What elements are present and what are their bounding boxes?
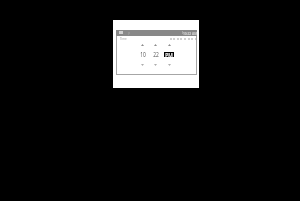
button[interactable]: Tool 1 <box>169 37 172 40</box>
button[interactable]: Increase hour <box>136 42 148 47</box>
staticText: 10 <box>140 50 146 59</box>
staticText: PM <box>165 51 173 60</box>
button[interactable]: Time <box>119 36 128 41</box>
button[interactable]: Decrease hour <box>136 62 148 67</box>
button[interactable]: PM <box>164 52 174 57</box>
button[interactable]: 10 <box>138 51 147 56</box>
button[interactable]: 22 <box>151 51 160 56</box>
button[interactable]: Increase minute <box>149 42 161 47</box>
button[interactable]: Tool 6 <box>187 37 190 40</box>
staticText: Time <box>120 36 127 41</box>
button[interactable]: Tool 4 <box>179 37 182 40</box>
staticText: 22 <box>153 50 159 59</box>
button[interactable]: Tool 7 <box>190 37 193 40</box>
button[interactable]: Decrease minute <box>149 62 161 67</box>
button[interactable]: Tool 3 <box>176 37 179 40</box>
button[interactable]: Increase AM or PM <box>163 42 175 47</box>
button[interactable]: Decrease AM or PM <box>163 62 175 67</box>
button[interactable]: Tool 5 <box>183 37 186 40</box>
staticText: 10:22 AM <box>183 31 198 36</box>
button[interactable]: Tool 8 <box>194 37 197 40</box>
button[interactable]: Tool 2 <box>172 37 175 40</box>
